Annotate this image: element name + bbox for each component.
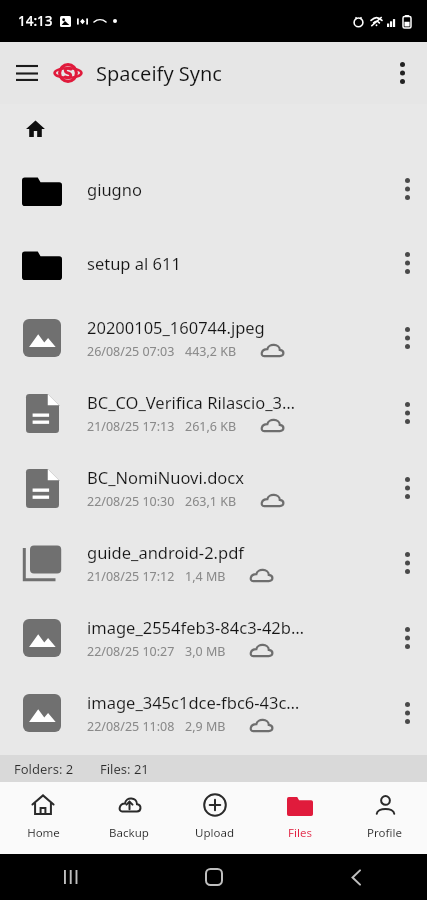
staticText: guide_android-2.pdf [87,541,244,563]
staticText: image_345c1dce-fbc6-43c… [87,691,300,713]
staticText: 1,4 MB [185,568,226,585]
button[interactable]: More options for giugno [387,152,427,226]
button[interactable]: Files [257,782,342,854]
button[interactable]: More options for image_345c1dce-fbc6-43c… [387,675,427,750]
staticText: 2,9 MB [185,718,226,735]
staticText: 22/08/25 11:08 [87,718,175,735]
staticText: Files: 21 [100,760,149,778]
button[interactable]: BC_CO_Verifica Rilascio_3… [0,375,427,450]
staticText: 21/08/25 17:12 [87,568,175,585]
staticText: Files [288,825,312,841]
button[interactable]: More options [377,48,427,98]
staticText: BC_NomiNuovi.docx [87,466,244,488]
staticText: 261,6 KB [185,418,237,435]
button[interactable]: Open navigation menu [0,46,54,100]
staticText: setup al 611 [87,252,181,274]
button[interactable]: More options for image_2554feb3-84c3-42b… [387,600,427,675]
button[interactable]: Recent apps [0,854,143,900]
staticText: Upload [195,825,234,841]
button[interactable]: Home [0,782,86,854]
staticText: 22/08/25 10:30 [87,493,175,510]
staticText: 22/08/25 10:27 [87,643,175,660]
button[interactable]: Profile [342,782,427,854]
button[interactable]: Home folder [18,111,52,145]
staticText: 21/08/25 17:13 [87,418,175,435]
button[interactable]: Home [143,854,285,900]
staticText: Folders: 2 [14,760,74,778]
staticText: BC_CO_Verifica Rilascio_3… [87,391,296,413]
staticText: giugno [87,178,142,200]
button[interactable]: More options for guide_android-2.pdf [387,525,427,600]
button[interactable]: giugno [0,152,427,226]
button[interactable]: Back [285,854,427,900]
button[interactable]: More options for BC_CO_Verifica Rilascio… [387,375,427,450]
button[interactable]: guide_android-2.pdf [0,525,427,600]
button[interactable]: 20200105_160744.jpeg [0,300,427,375]
button[interactable]: image_345c1dce-fbc6-43c… [0,675,427,750]
staticText: 14:13 [18,12,53,30]
staticText: 3,0 MB [185,643,226,660]
staticText: 263,1 KB [185,493,237,510]
staticText: 443,2 KB [185,343,237,360]
button[interactable]: More options for 20200105_160744.jpeg [387,300,427,375]
staticText: Spaceify Sync [96,60,222,87]
button[interactable]: setup al 611 [0,226,427,300]
button[interactable]: More options for BC_NomiNuovi.docx [387,450,427,525]
staticText: Profile [367,825,402,841]
button[interactable]: Upload [172,782,257,854]
button[interactable]: Backup [86,782,172,854]
staticText: Backup [109,825,149,841]
staticText: 26/08/25 07:03 [87,343,175,360]
button[interactable]: image_2554feb3-84c3-42b… [0,600,427,675]
button[interactable]: More options for setup al 611 [387,226,427,300]
button[interactable]: BC_NomiNuovi.docx [0,450,427,525]
staticText: 20200105_160744.jpeg [87,316,265,338]
staticText: image_2554feb3-84c3-42b… [87,616,304,638]
staticText: Home [27,825,60,841]
